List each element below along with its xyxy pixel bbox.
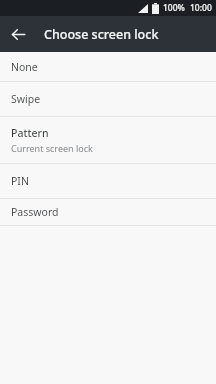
staticText: Current screen lock: [11, 142, 93, 154]
button[interactable]: Password: [0, 199, 216, 225]
staticText: Swipe: [11, 92, 41, 106]
button[interactable]: PIN: [0, 164, 216, 198]
staticText: Password: [11, 205, 59, 219]
staticText: PIN: [11, 174, 29, 188]
staticText: Pattern: [11, 126, 49, 140]
staticText: None: [11, 60, 38, 74]
button[interactable]: Swipe: [0, 82, 216, 116]
staticText: Choose screen lock: [44, 26, 159, 43]
staticText: 100%: [163, 2, 185, 14]
button[interactable]: None: [0, 52, 216, 81]
button[interactable]: Navigate up: [0, 16, 36, 52]
button[interactable]: Pattern: [0, 117, 216, 163]
staticText: 10:00: [190, 2, 212, 14]
